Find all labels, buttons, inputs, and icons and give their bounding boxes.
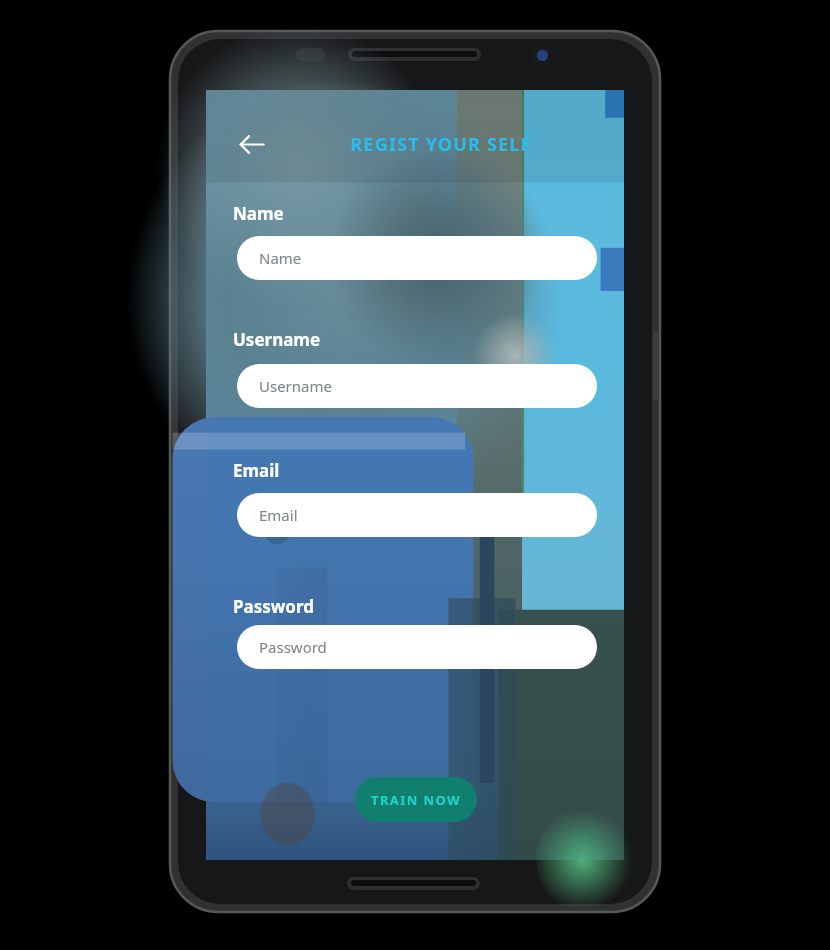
staticText: Email (259, 505, 298, 525)
staticText: Password (233, 595, 314, 618)
staticText: Email (233, 459, 280, 482)
button[interactable]: Username (237, 364, 597, 408)
button[interactable]: Back (230, 123, 272, 165)
staticText: REGIST YOUR SELF (288, 132, 594, 157)
staticText: Username (233, 328, 321, 351)
staticText: Password (259, 637, 327, 657)
button[interactable]: Password (237, 625, 597, 669)
button[interactable]: Name (237, 236, 597, 280)
staticText: Name (259, 248, 302, 268)
staticText: TRAIN NOW (371, 791, 461, 809)
button[interactable]: Email (237, 493, 597, 537)
button[interactable]: TRAIN NOW (355, 777, 477, 822)
staticText: Name (233, 202, 284, 225)
staticText: Username (259, 376, 332, 396)
